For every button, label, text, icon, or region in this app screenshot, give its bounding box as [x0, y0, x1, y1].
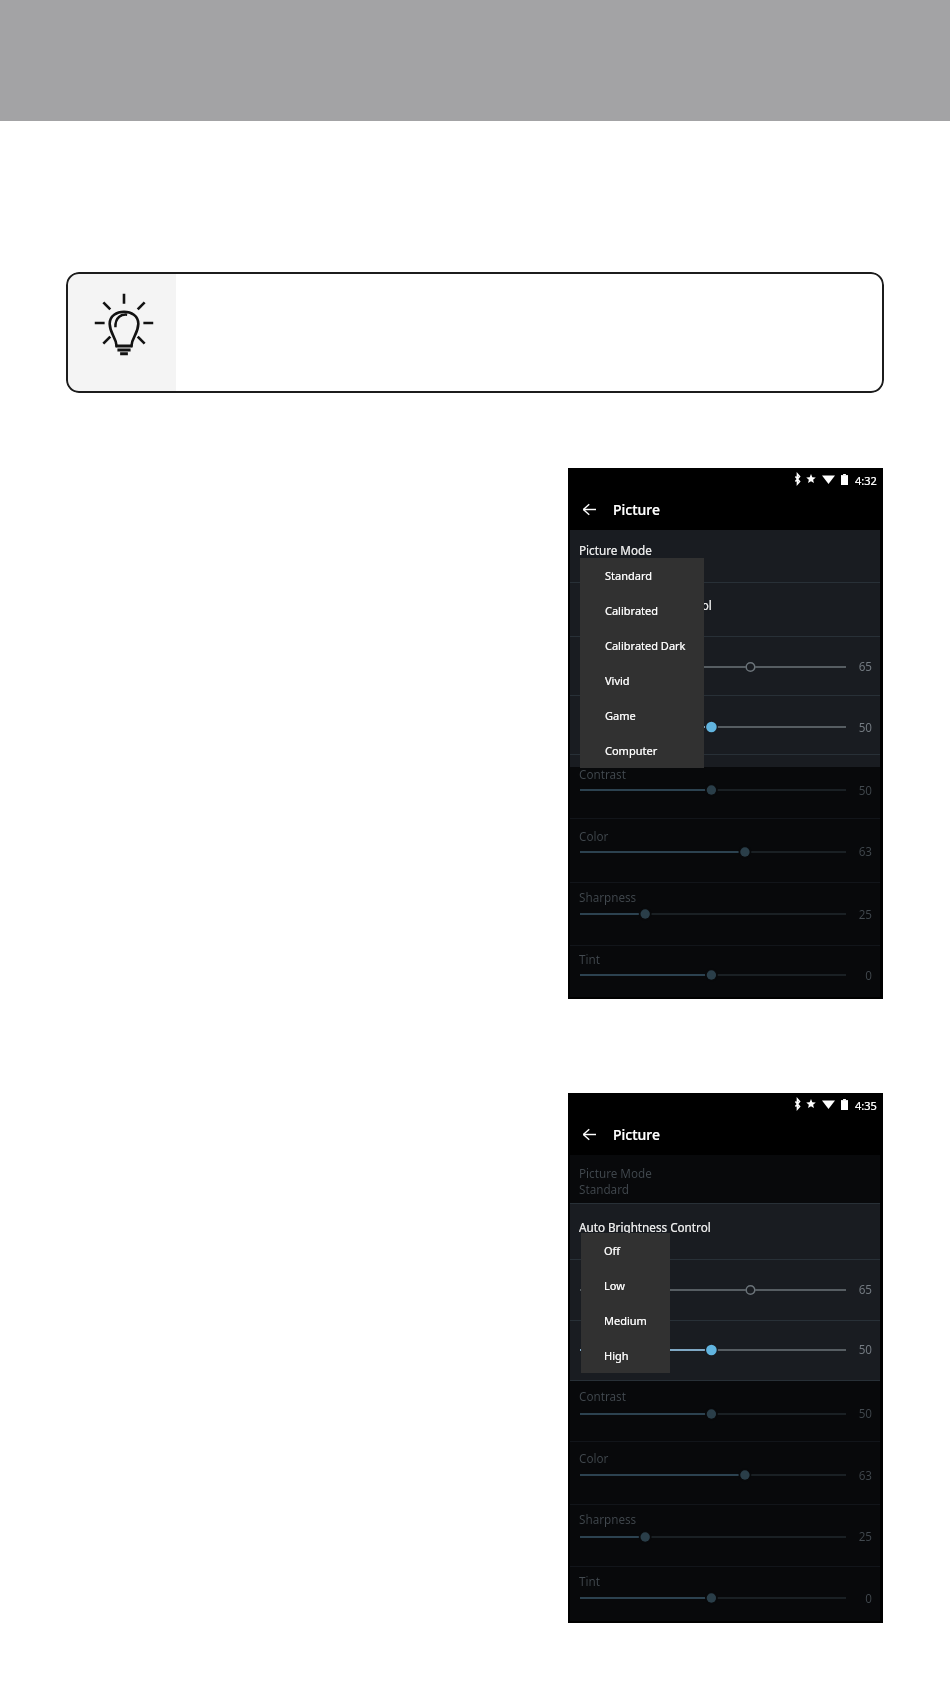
button[interactable]: Calibrated	[580, 593, 704, 628]
staticText: Medium	[604, 1313, 647, 1328]
staticText: Picture Mode	[579, 1165, 652, 1181]
staticText: Game	[605, 708, 636, 723]
button[interactable]: Back	[571, 1116, 608, 1153]
staticText: Contrast	[579, 1388, 626, 1404]
button[interactable]: Backlight 65	[570, 1259, 880, 1320]
staticText: 4:32	[855, 473, 877, 485]
button[interactable]: Auto Brightness Control	[570, 1203, 880, 1259]
staticText: Tint	[579, 1573, 600, 1589]
button[interactable]: Picture Mode Standard	[570, 1155, 880, 1203]
staticText: Picture Mode	[579, 542, 652, 558]
staticText: 0	[848, 1590, 872, 1606]
staticText: 50	[848, 1405, 872, 1421]
staticText: 25	[848, 1528, 872, 1544]
staticText: Standard	[579, 1181, 629, 1197]
button[interactable]: Brightness 50	[570, 1320, 880, 1380]
button[interactable]: Low	[581, 1268, 670, 1303]
button[interactable]: Standard	[580, 558, 704, 593]
button[interactable]: Computer	[580, 733, 704, 768]
staticText: Picture	[613, 1125, 661, 1144]
staticText: 50	[848, 719, 872, 735]
staticText: 63	[848, 843, 872, 859]
staticText: Color	[579, 1450, 609, 1466]
button[interactable]: High	[581, 1338, 670, 1373]
staticText: Auto Brightness Control	[580, 597, 712, 613]
button[interactable]: Back	[571, 491, 608, 528]
staticText: Picture	[613, 500, 661, 519]
button[interactable]: Backlight 65	[570, 636, 880, 695]
button[interactable]: Auto Brightness Control	[570, 582, 880, 636]
staticText: Sharpness	[579, 1511, 637, 1527]
staticText: Tint	[579, 951, 600, 967]
staticText: Color	[579, 828, 609, 844]
staticText: 65	[848, 1281, 872, 1297]
button[interactable]: Off	[581, 1233, 670, 1268]
staticText: Calibrated	[605, 603, 658, 618]
button[interactable]: Game	[580, 698, 704, 733]
button[interactable]: Tint 0	[570, 945, 880, 996]
staticText: 50	[848, 1341, 872, 1357]
staticText: Vivid	[605, 673, 630, 688]
staticText: Computer	[605, 743, 658, 758]
staticText: Off	[604, 1243, 621, 1258]
button[interactable]: Picture Mode	[570, 530, 880, 582]
button[interactable]: Medium	[581, 1303, 670, 1338]
button[interactable]: Tint 0	[570, 1566, 880, 1621]
staticText: High	[604, 1348, 629, 1363]
button[interactable]: Vivid	[580, 663, 704, 698]
button[interactable]: Color 63	[570, 1441, 880, 1504]
staticText: 65	[848, 658, 872, 674]
staticText: 50	[848, 782, 872, 798]
button[interactable]	[66, 272, 884, 393]
staticText: Sharpness	[579, 889, 637, 905]
button[interactable]: Color 63	[570, 818, 880, 883]
staticText: Calibrated Dark	[605, 638, 686, 653]
staticText: 0	[848, 967, 872, 983]
button[interactable]: Sharpness 25	[570, 882, 880, 945]
staticText: Auto Brightness Control	[579, 1219, 711, 1235]
staticText: Low	[604, 1278, 625, 1293]
staticText: Contrast	[579, 766, 626, 782]
staticText: 63	[848, 1467, 872, 1483]
staticText: 4:35	[855, 1098, 877, 1110]
button[interactable]: Contrast 50	[570, 754, 880, 818]
button[interactable]: Calibrated Dark	[580, 628, 704, 663]
staticText: Standard	[605, 568, 653, 583]
button[interactable]: Sharpness 25	[570, 1504, 880, 1566]
button[interactable]: Brightness 50	[570, 695, 880, 753]
button[interactable]: Contrast 50	[570, 1380, 880, 1442]
staticText: 25	[848, 906, 872, 922]
